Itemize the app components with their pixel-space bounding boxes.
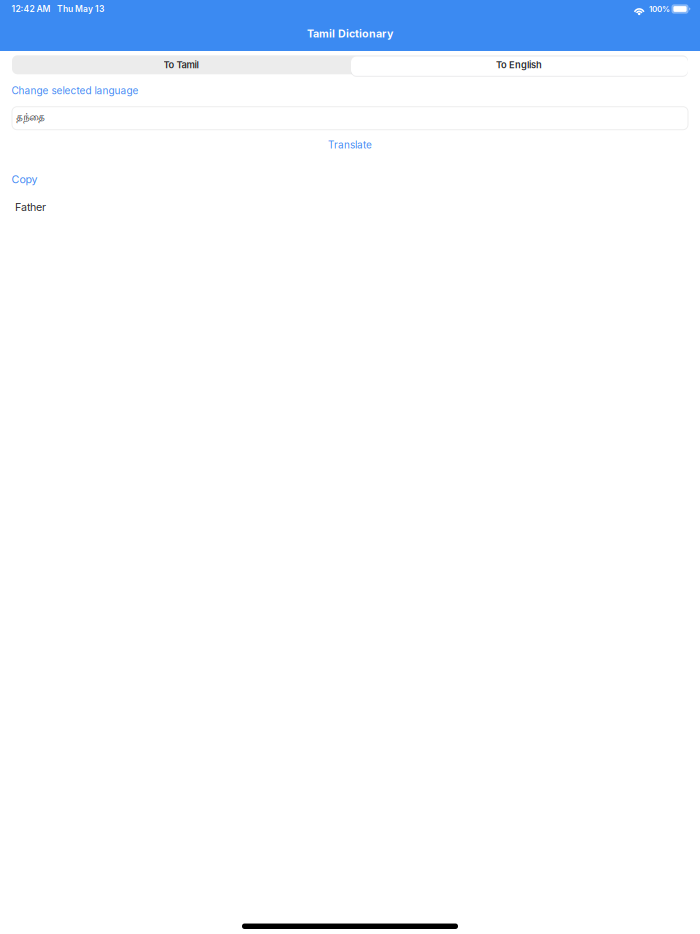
staticText: To Tamil: [163, 59, 198, 70]
button[interactable]: Change selected language: [11, 85, 138, 97]
staticText: Translate: [328, 139, 372, 151]
staticText: Copy: [11, 173, 37, 186]
staticText: Father: [15, 201, 46, 214]
button[interactable]: To Tamil: [12, 55, 350, 74]
staticText: 100%: [649, 4, 670, 14]
staticText: தந்தை: [16, 112, 45, 124]
staticText: Tamil Dictionary: [307, 27, 393, 40]
button[interactable]: Translate: [0, 139, 700, 151]
staticText: Change selected language: [11, 85, 138, 97]
button[interactable]: To English: [350, 55, 688, 74]
staticText: To English: [496, 59, 542, 70]
staticText: Thu May 13: [57, 4, 104, 14]
staticText: 12:42 AM: [11, 4, 50, 14]
button[interactable]: Copy: [11, 173, 37, 186]
